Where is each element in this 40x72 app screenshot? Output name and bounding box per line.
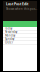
staticText: Yesterday bbox=[5, 30, 17, 34]
button[interactable]: Yesterday bbox=[3, 30, 37, 34]
staticText: Monday bbox=[5, 34, 15, 37]
staticText: Last Post Edit bbox=[6, 2, 28, 6]
staticText: Shows when this post was last edited and… bbox=[6, 7, 37, 11]
button[interactable]: Older bbox=[3, 41, 37, 44]
staticText: Sunday bbox=[5, 37, 14, 41]
staticText: Older bbox=[5, 41, 13, 44]
staticText: Today bbox=[5, 27, 12, 30]
button[interactable]: Sunday bbox=[3, 37, 37, 41]
button[interactable]: Today bbox=[3, 27, 37, 30]
button[interactable]: Monday bbox=[3, 34, 37, 37]
